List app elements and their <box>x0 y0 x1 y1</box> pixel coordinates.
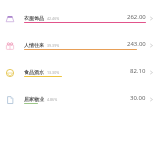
staticText: 42.46% <box>47 16 60 21</box>
staticText: 39.39% <box>47 43 60 48</box>
button[interactable]: Gifts category <box>0 32 160 59</box>
button[interactable]: Household category <box>0 86 160 113</box>
staticText: 食品酒水 <box>24 69 44 75</box>
staticText: 4.86% <box>47 97 58 102</box>
staticText: 82.10 <box>130 67 146 75</box>
staticText: 居家物业 <box>24 96 44 102</box>
other: Food and drink category <box>6 69 14 77</box>
other: Gifts category <box>6 42 14 50</box>
staticText: 13.30% <box>47 70 60 75</box>
other: Household category <box>6 96 14 104</box>
staticText: 243.00 <box>127 40 146 48</box>
staticText: 30.00 <box>130 94 146 102</box>
button[interactable]: Clothing category <box>0 5 160 32</box>
staticText: 衣服饰品 <box>24 15 44 21</box>
staticText: 262.00 <box>127 13 146 21</box>
button[interactable]: Food and drink category <box>0 59 160 86</box>
other: Clothing category <box>6 15 14 23</box>
staticText: 人情往来 <box>24 42 44 48</box>
